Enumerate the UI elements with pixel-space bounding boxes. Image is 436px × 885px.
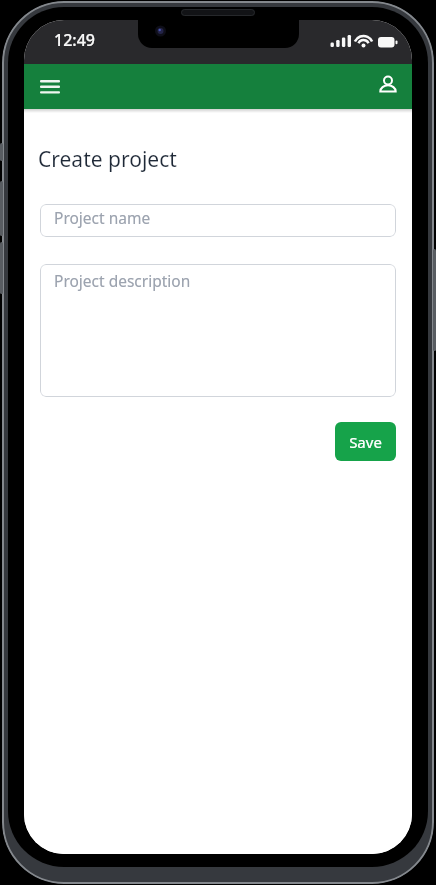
staticText: Project description	[54, 270, 191, 291]
button[interactable]: Project description	[40, 264, 396, 397]
button[interactable]: Project name	[40, 204, 396, 237]
button[interactable]	[32, 73, 68, 101]
staticText: Project name	[54, 207, 151, 228]
staticText: Create project	[38, 145, 177, 174]
staticText: 12:49	[54, 29, 95, 51]
button[interactable]: Save	[335, 422, 396, 461]
staticText: Save	[349, 432, 382, 452]
button[interactable]	[372, 72, 404, 102]
